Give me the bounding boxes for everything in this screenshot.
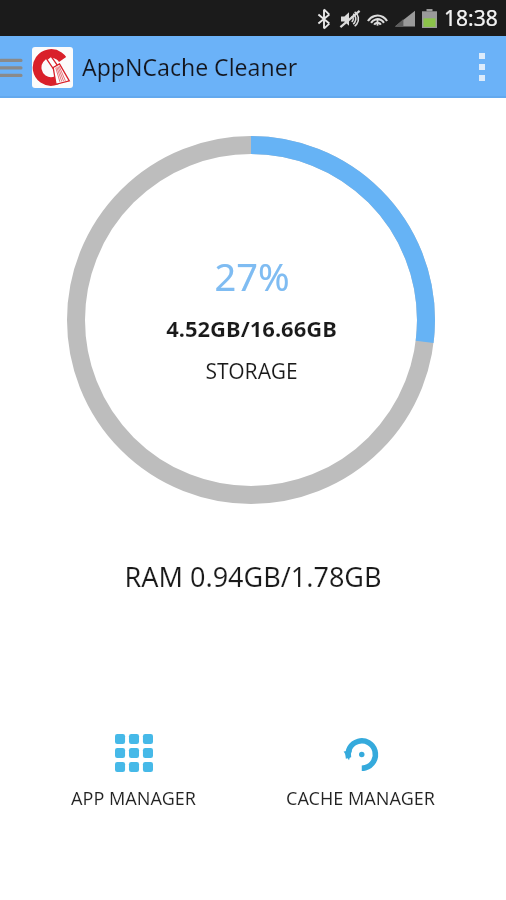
button[interactable]: CACHE MANAGER [268, 726, 453, 819]
button[interactable]: More options [458, 36, 506, 98]
staticText: RAM 0.94GB/1.78GB [124, 558, 382, 595]
staticText: 4.52GB/16.66GB [166, 313, 337, 343]
button[interactable]: APP MANAGER [53, 726, 214, 819]
staticText: 27% [214, 250, 290, 302]
staticText: AppNCache Cleaner [82, 51, 298, 82]
button[interactable]: Open navigation drawer [0, 36, 26, 98]
staticText: APP MANAGER [71, 786, 196, 811]
staticText: STORAGE [205, 357, 298, 386]
staticText: CACHE MANAGER [286, 786, 435, 811]
staticText: 18:38 [444, 4, 498, 33]
